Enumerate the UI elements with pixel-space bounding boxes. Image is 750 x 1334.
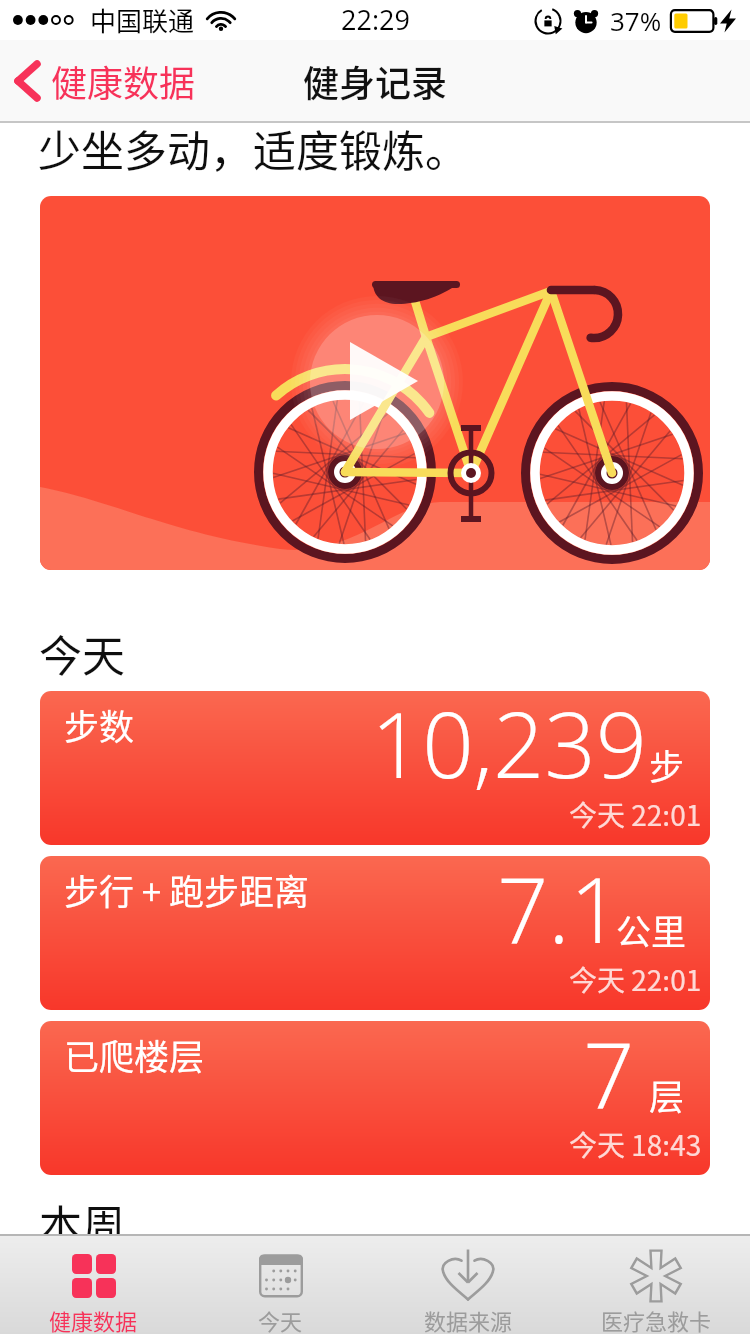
staticText: 健身记录 xyxy=(303,55,448,107)
button[interactable]: 已爬楼层 xyxy=(40,1021,710,1175)
staticText: 今天 xyxy=(39,622,125,684)
staticText: 层 xyxy=(649,1069,685,1120)
button[interactable]: Play workout video xyxy=(40,196,710,570)
button[interactable]: 医疗急救卡 xyxy=(562,1236,750,1334)
staticText: 健康数据 xyxy=(49,1304,138,1334)
staticText: 医疗急救卡 xyxy=(601,1304,712,1334)
button[interactable]: 今天 xyxy=(187,1236,374,1334)
staticText: 公里 xyxy=(616,904,687,955)
staticText: 少坐多动，适度锻炼。 xyxy=(38,117,468,179)
staticText: 10,239 xyxy=(371,691,648,805)
button[interactable]: 健康数据 xyxy=(0,45,210,117)
staticText: 今天 18:43 xyxy=(569,1124,702,1165)
staticText: 今天 22:01 xyxy=(569,959,702,1000)
staticText: 步 xyxy=(649,739,685,790)
staticText: 步数 xyxy=(64,699,135,750)
button[interactable]: 健康数据 xyxy=(0,1236,187,1334)
staticText: 数据来源 xyxy=(424,1304,513,1334)
staticText: 健康数据 xyxy=(51,55,196,107)
staticText: 今天 22:01 xyxy=(569,794,702,835)
staticText: 本周 xyxy=(39,1192,125,1254)
button[interactable]: 数据来源 xyxy=(374,1236,562,1334)
staticText: 已爬楼层 xyxy=(64,1029,205,1080)
staticText: 7 xyxy=(583,1021,635,1135)
staticText: 步行 + 跑步距离 xyxy=(64,864,310,915)
button[interactable]: 步数 xyxy=(40,691,710,845)
staticText: 22:29 xyxy=(341,1,410,38)
button[interactable]: 步行 + 跑步距离 xyxy=(40,856,710,1010)
staticText: 37% xyxy=(610,3,662,38)
staticText: 今天 xyxy=(258,1304,303,1334)
staticText: 中国联通 xyxy=(90,1,195,39)
staticText: 7.1 xyxy=(497,856,622,970)
